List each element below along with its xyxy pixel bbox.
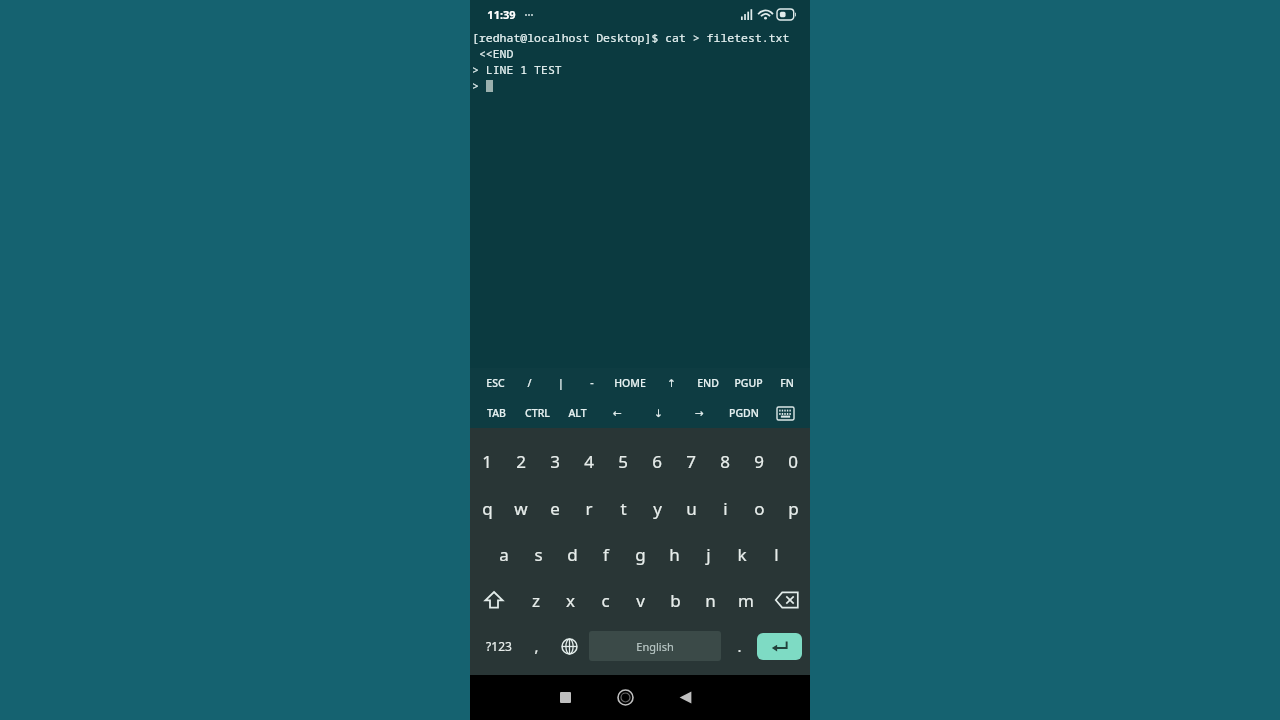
button[interactable]: / [514, 368, 545, 398]
staticText: h [669, 543, 680, 566]
button[interactable]: m [728, 577, 763, 623]
staticText: g [635, 543, 646, 566]
button[interactable]: ↑ [653, 368, 689, 398]
button[interactable]: g [623, 531, 657, 577]
button[interactable]: ESC [476, 368, 514, 398]
button[interactable]: → [679, 398, 720, 428]
button[interactable]: a [487, 531, 521, 577]
button[interactable]: ↓ [638, 398, 679, 428]
button[interactable]: PGDN [720, 398, 767, 428]
button[interactable]: CTRL [516, 398, 558, 428]
button[interactable]: Back [655, 675, 715, 720]
button[interactable]: TAB [476, 398, 516, 428]
button[interactable]: f [589, 531, 623, 577]
button[interactable]: PGUP [727, 368, 769, 398]
button[interactable]: END [689, 368, 727, 398]
staticText: → [695, 407, 704, 419]
button[interactable]: , [521, 623, 552, 669]
button[interactable]: c [588, 577, 623, 623]
button[interactable]: FN [769, 368, 804, 398]
staticText: TAB [487, 406, 506, 420]
staticText: ↓ [654, 407, 663, 419]
button[interactable]: Hide keyboard [767, 398, 804, 428]
button[interactable]: - [576, 368, 607, 398]
button[interactable]: r [572, 485, 606, 531]
button[interactable]: . [724, 623, 755, 669]
button[interactable]: 0 [776, 438, 810, 485]
staticText: m [738, 589, 754, 612]
button[interactable]: Home [595, 675, 655, 720]
staticText: CTRL [525, 406, 550, 420]
staticText: q [482, 497, 493, 520]
button[interactable]: Enter [757, 633, 802, 660]
button[interactable]: s [521, 531, 555, 577]
button[interactable]: h [657, 531, 691, 577]
staticText: t [620, 497, 627, 520]
staticText: - [590, 376, 594, 390]
button[interactable]: 5 [606, 438, 640, 485]
staticText: f [603, 543, 609, 566]
staticText: , [534, 636, 539, 656]
staticText: HOME [614, 376, 646, 390]
staticText: ← [613, 407, 622, 419]
staticText: / [527, 376, 532, 390]
button[interactable]: q [470, 485, 504, 531]
staticText: z [532, 589, 540, 612]
staticText: . [737, 636, 742, 656]
button[interactable]: z [518, 577, 553, 623]
button[interactable]: 7 [674, 438, 708, 485]
button[interactable]: t [606, 485, 640, 531]
button[interactable]: Shift [470, 577, 518, 623]
button[interactable]: Change language [552, 623, 586, 669]
button[interactable]: u [674, 485, 708, 531]
button[interactable]: 3 [538, 438, 572, 485]
button[interactable]: j [691, 531, 725, 577]
staticText: b [670, 589, 681, 612]
staticText: ALT [568, 406, 587, 420]
button[interactable]: y [640, 485, 674, 531]
button[interactable]: Backspace [763, 577, 810, 623]
button[interactable]: 2 [504, 438, 538, 485]
staticText: l [774, 543, 779, 566]
staticText: 0 [788, 450, 798, 473]
staticText: 3 [550, 450, 560, 473]
button[interactable]: ?123 [476, 623, 521, 669]
button[interactable]: p [776, 485, 810, 531]
staticText: END [697, 376, 719, 390]
button[interactable]: x [553, 577, 588, 623]
button[interactable]: | [545, 368, 576, 398]
button[interactable]: HOME [607, 368, 653, 398]
button[interactable]: n [693, 577, 728, 623]
button[interactable]: English [589, 631, 721, 661]
button[interactable]: 9 [742, 438, 776, 485]
button[interactable]: e [538, 485, 572, 531]
button[interactable]: ← [597, 398, 638, 428]
button[interactable]: l [759, 531, 793, 577]
button[interactable]: Recents [535, 675, 595, 720]
button[interactable]: 6 [640, 438, 674, 485]
button[interactable]: 8 [708, 438, 742, 485]
button[interactable]: ALT [558, 398, 597, 428]
staticText: c [601, 589, 610, 612]
button[interactable]: 4 [572, 438, 606, 485]
staticText: k [737, 543, 747, 566]
staticText: | [558, 376, 564, 390]
staticText: 9 [754, 450, 764, 473]
staticText: 4 [584, 450, 594, 473]
button[interactable]: d [555, 531, 589, 577]
button[interactable]: i [708, 485, 742, 531]
staticText: English [636, 639, 674, 654]
staticText: o [754, 497, 765, 520]
button[interactable]: 1 [470, 438, 504, 485]
staticText: 2 [516, 450, 526, 473]
button[interactable]: o [742, 485, 776, 531]
button[interactable]: v [623, 577, 658, 623]
staticText: [redhat@localhost Desktop]$ cat > filete… [472, 30, 790, 46]
staticText: 1 [482, 450, 492, 473]
button[interactable]: k [725, 531, 759, 577]
staticText: 6 [652, 450, 662, 473]
button[interactable]: b [658, 577, 693, 623]
button[interactable]: w [504, 485, 538, 531]
staticText: ↑ [667, 377, 676, 389]
staticText: > LINE 1 TEST [472, 62, 562, 78]
